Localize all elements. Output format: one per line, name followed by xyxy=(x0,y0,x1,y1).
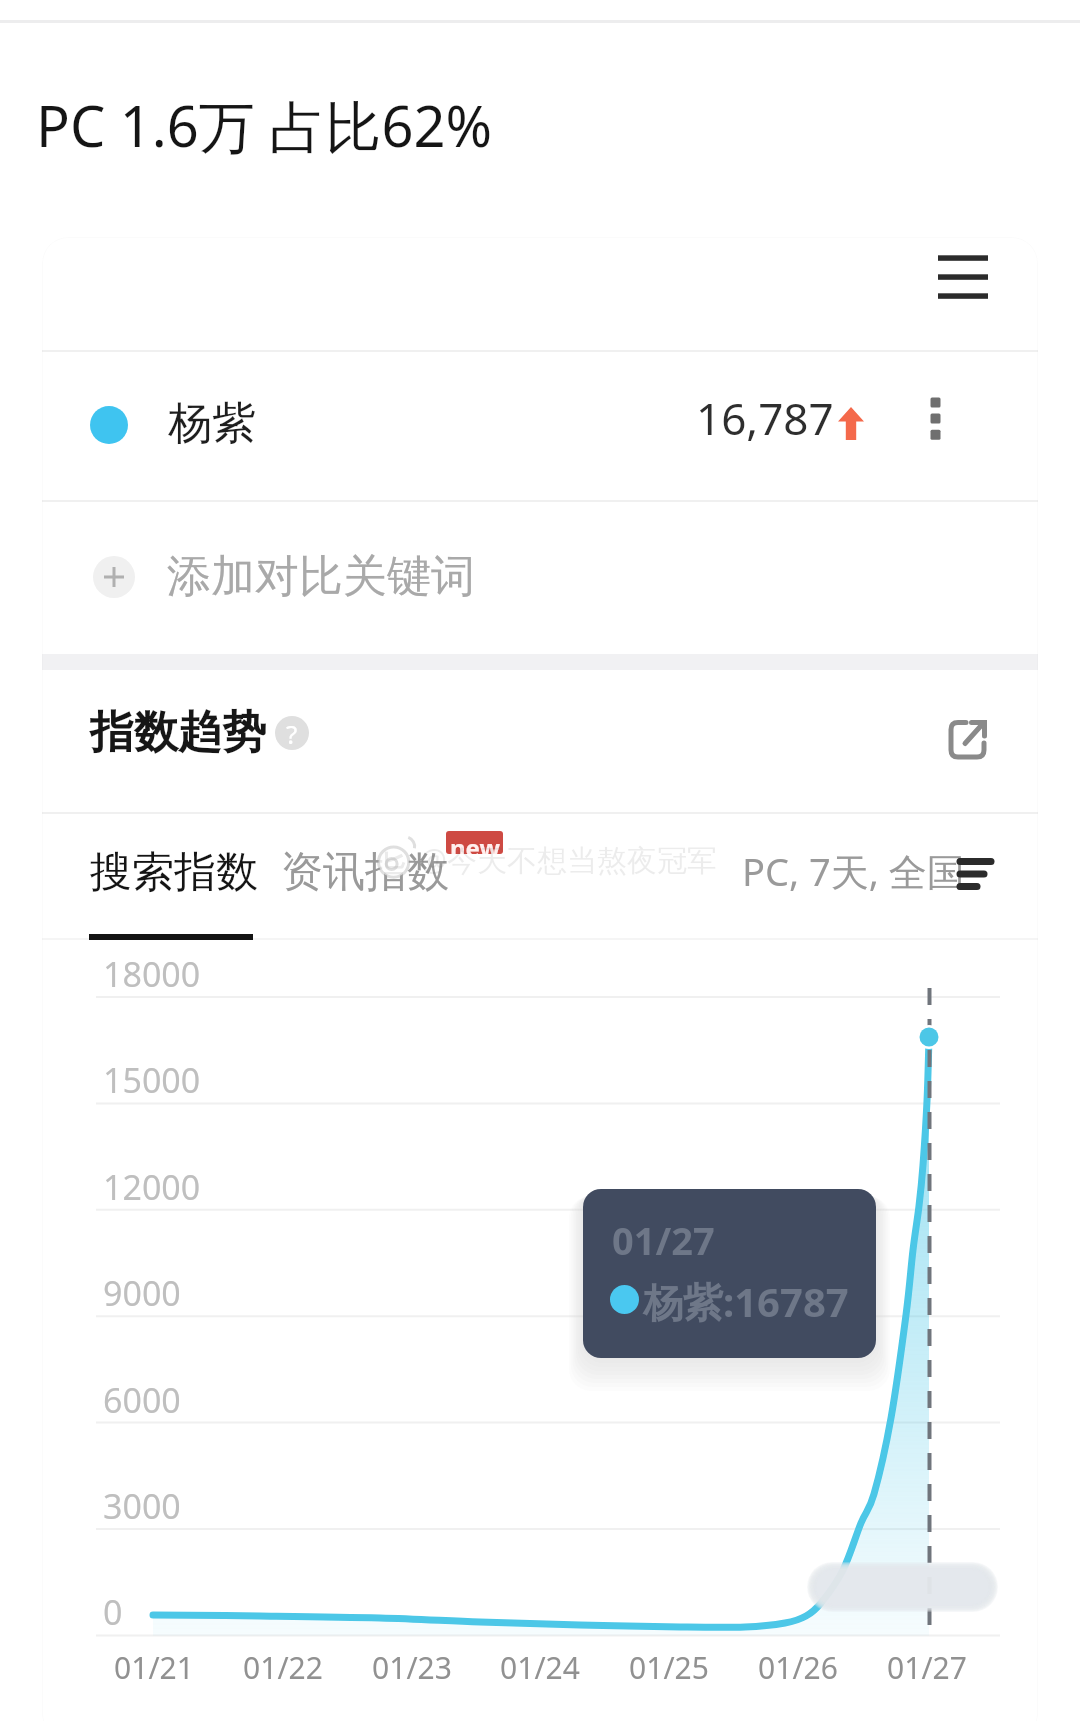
button[interactable]: Open in new window xyxy=(928,700,1006,778)
staticText: 3000 xyxy=(103,1483,181,1529)
staticText: PC, 7天, 全国 xyxy=(742,845,965,897)
staticText: 0 xyxy=(103,1589,123,1635)
button[interactable]: PC, 7天, 全国 xyxy=(735,835,999,907)
staticText: 18000 xyxy=(103,951,201,997)
staticText: 指数趋势 xyxy=(90,705,266,760)
staticText: 12000 xyxy=(103,1164,201,1210)
staticText: 01/22 xyxy=(218,1647,348,1688)
button[interactable]: Help xyxy=(275,716,309,750)
button[interactable]: 资讯指数 xyxy=(268,824,450,940)
staticText: 01/21 xyxy=(89,1647,219,1688)
staticText: 01/23 xyxy=(347,1647,477,1688)
staticText: 16,787 xyxy=(696,388,834,448)
staticText: 杨紫 xyxy=(168,396,256,451)
staticText: 搜索指数 xyxy=(90,846,258,899)
staticText: 15000 xyxy=(103,1057,201,1103)
staticText: 9000 xyxy=(103,1270,181,1316)
staticText: 添加对比关键词 xyxy=(167,549,475,604)
staticText: 01/24 xyxy=(475,1647,605,1688)
button[interactable]: 搜索指数 xyxy=(80,824,262,940)
button[interactable]: Menu xyxy=(900,238,1012,350)
staticText: 6000 xyxy=(103,1377,181,1423)
staticText: @今天不想当熬夜冠军 xyxy=(420,839,717,880)
staticText: 01/26 xyxy=(733,1647,863,1688)
staticText: 01/27 xyxy=(862,1647,992,1688)
staticText: 01/27 xyxy=(612,1214,715,1266)
staticText: new xyxy=(450,831,500,854)
button[interactable]: More options xyxy=(898,370,970,442)
staticText: ? xyxy=(286,716,298,750)
button[interactable]: 添加对比关键词 xyxy=(42,502,1038,652)
staticText: PC 1.6万 占比62% xyxy=(36,87,493,163)
button[interactable]: 杨紫 xyxy=(42,352,1038,498)
staticText: 资讯指数 xyxy=(281,846,449,899)
staticText: 杨紫:16787 xyxy=(643,1274,849,1329)
staticText: 01/25 xyxy=(604,1647,734,1688)
